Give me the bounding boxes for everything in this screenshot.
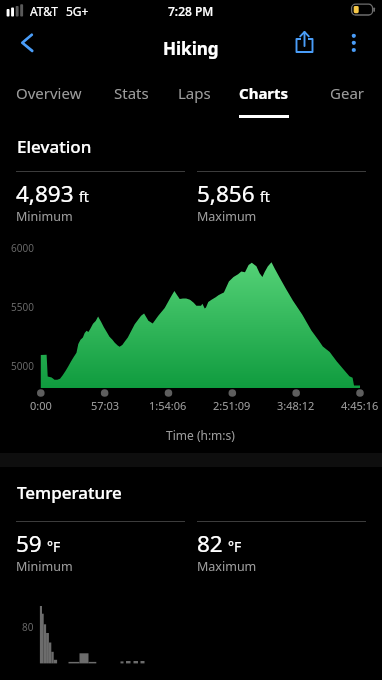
staticText: Maximum (197, 208, 257, 225)
button[interactable]: More options (334, 25, 374, 73)
button[interactable]: Charts (223, 73, 305, 121)
staticText: Gear (330, 83, 364, 103)
staticText: 59 (16, 528, 42, 559)
staticText: °F (228, 537, 242, 556)
staticText: Laps (178, 83, 211, 103)
button[interactable]: Overview (8, 73, 90, 121)
staticText: 6000 (11, 241, 34, 255)
staticText: Stats (114, 83, 149, 103)
staticText: 4,893 (16, 178, 74, 209)
staticText: Hiking (163, 37, 219, 60)
button[interactable]: Share (284, 25, 326, 73)
staticText: Maximum (197, 558, 257, 575)
staticText: 5,856 (197, 178, 255, 209)
staticText: AT&T (30, 3, 58, 19)
staticText: ft (79, 187, 89, 206)
staticText: Overview (16, 83, 82, 103)
staticText: 2:51:09 (213, 398, 251, 413)
staticText: 4:45:16 (341, 398, 379, 413)
button[interactable]: Back (6, 25, 40, 73)
button[interactable]: Stats (90, 73, 172, 121)
staticText: °F (47, 537, 61, 556)
staticText: Time (h:m:s) (166, 427, 235, 443)
staticText: Charts (239, 83, 289, 103)
staticText: 3:48:12 (277, 398, 315, 413)
staticText: 7:28 PM (168, 3, 214, 19)
staticText: 0:00 (30, 398, 52, 413)
staticText: 5000 (11, 359, 34, 373)
staticText: Minimum (16, 208, 73, 225)
staticText: 80 (22, 620, 34, 634)
staticText: Minimum (16, 558, 73, 575)
staticText: ft (260, 187, 270, 206)
button[interactable]: Laps (153, 73, 235, 121)
staticText: Temperature (17, 481, 122, 504)
staticText: 57:03 (91, 398, 120, 413)
button[interactable]: Gear (306, 73, 382, 121)
staticText: 1:54:06 (149, 398, 187, 413)
staticText: Elevation (17, 135, 92, 158)
staticText: 5500 (11, 300, 34, 314)
staticText: 82 (197, 528, 223, 559)
staticText: 5G+ (66, 3, 89, 19)
